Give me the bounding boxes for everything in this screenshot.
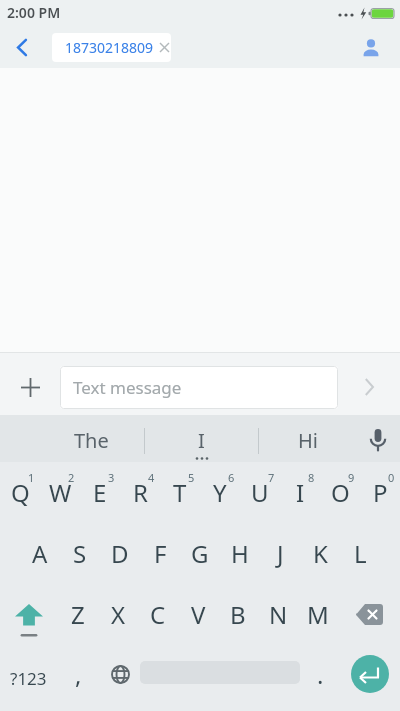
staticText: 6 [228, 470, 235, 485]
staticText: 18730218809 [65, 38, 154, 57]
staticText: Y [213, 476, 227, 509]
staticText: 9 [348, 470, 355, 485]
staticText: O [331, 476, 350, 509]
button[interactable]: Hi [259, 415, 356, 462]
button[interactable] [0, 584, 58, 645]
button[interactable]: O [320, 462, 360, 523]
staticText: D [111, 537, 129, 570]
button[interactable]: I [145, 415, 258, 462]
staticText: F [154, 537, 167, 570]
button[interactable]: H [220, 523, 260, 584]
staticText: L [354, 537, 367, 570]
button[interactable]: M [298, 584, 338, 645]
button[interactable]: P [360, 462, 400, 523]
staticText: N [269, 598, 288, 631]
button[interactable]: Text message [60, 366, 338, 409]
button[interactable]: D [100, 523, 140, 584]
staticText: J [277, 537, 284, 570]
staticText: G [191, 537, 209, 570]
staticText: M [307, 598, 329, 631]
button[interactable]: Q [0, 462, 40, 523]
staticText: I [296, 476, 305, 509]
staticText: 5 [188, 470, 195, 485]
button[interactable]: V [178, 584, 218, 645]
staticText: P [373, 476, 388, 509]
button[interactable]: N [258, 584, 298, 645]
button[interactable] [347, 27, 395, 68]
button[interactable] [140, 641, 300, 707]
button[interactable] [0, 356, 60, 418]
button[interactable]: A [20, 523, 60, 584]
staticText: ?123 [10, 667, 47, 690]
button[interactable]: C [138, 584, 178, 645]
staticText: Text message [73, 376, 182, 399]
staticText: 3 [108, 470, 115, 485]
button[interactable]: S [60, 523, 100, 584]
staticText: E [93, 476, 107, 509]
staticText: 2 [68, 470, 75, 485]
button[interactable]: U [240, 462, 280, 523]
staticText: U [251, 476, 269, 509]
button[interactable]: The [38, 415, 144, 462]
staticText: 2:00 PM [7, 3, 61, 22]
button[interactable]: 18730218809 [52, 33, 171, 62]
staticText: Hi [298, 427, 318, 454]
button[interactable] [338, 356, 400, 418]
button[interactable] [356, 415, 400, 462]
button[interactable] [340, 641, 400, 707]
staticText: T [173, 476, 187, 509]
staticText: 7 [268, 470, 275, 485]
button[interactable]: . [300, 641, 340, 707]
staticText: S [73, 537, 87, 570]
staticText: Z [71, 598, 85, 631]
button[interactable]: G [180, 523, 220, 584]
button[interactable] [0, 27, 44, 68]
staticText: . [317, 658, 324, 691]
button[interactable]: T [160, 462, 200, 523]
button[interactable]: R [120, 462, 160, 523]
staticText: 8 [308, 470, 315, 485]
staticText: K [313, 537, 328, 570]
staticText: , [75, 658, 82, 691]
staticText: 4 [148, 470, 155, 485]
button[interactable]: I [280, 462, 320, 523]
button[interactable]: F [140, 523, 180, 584]
staticText: A [32, 537, 48, 570]
staticText: 1 [28, 470, 35, 485]
button[interactable]: Y [200, 462, 240, 523]
staticText: I [198, 427, 205, 454]
button[interactable]: ?123 [0, 641, 56, 707]
button[interactable]: X [98, 584, 138, 645]
button[interactable]: E [80, 462, 120, 523]
button[interactable] [338, 584, 400, 645]
staticText: W [49, 476, 72, 509]
button[interactable]: K [300, 523, 340, 584]
button[interactable]: L [340, 523, 380, 584]
button[interactable]: Z [58, 584, 98, 645]
staticText: R [133, 476, 148, 509]
staticText: Q [11, 476, 30, 509]
button[interactable]: B [218, 584, 258, 645]
staticText: H [231, 537, 249, 570]
staticText: B [230, 598, 246, 631]
button[interactable] [100, 641, 140, 707]
staticText: X [111, 598, 126, 631]
button[interactable]: , [56, 641, 100, 707]
staticText: The [74, 427, 109, 454]
staticText: V [191, 598, 206, 631]
staticText: C [150, 598, 166, 631]
staticText: 0 [388, 470, 395, 485]
button[interactable]: J [260, 523, 300, 584]
button[interactable]: W [40, 462, 80, 523]
